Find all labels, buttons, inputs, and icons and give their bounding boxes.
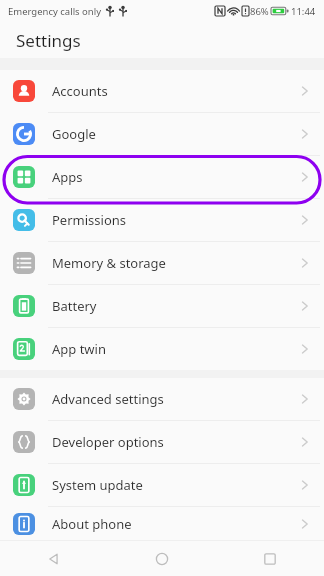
staticText: Settings bbox=[16, 29, 81, 52]
button[interactable]: Memory & storage bbox=[0, 242, 324, 284]
button[interactable]: Recents bbox=[216, 541, 324, 576]
staticText: Google bbox=[52, 125, 96, 143]
button[interactable]: Home bbox=[108, 541, 216, 576]
staticText: Developer options bbox=[52, 433, 164, 451]
staticText: Emergency calls only bbox=[8, 5, 102, 18]
staticText: About phone bbox=[52, 515, 132, 533]
staticText: App twin bbox=[52, 340, 106, 358]
button[interactable]: Permissions bbox=[0, 199, 324, 241]
staticText: Accounts bbox=[52, 82, 108, 100]
button[interactable]: Accounts bbox=[0, 70, 324, 112]
staticText: Memory & storage bbox=[52, 254, 166, 272]
staticText: Battery bbox=[52, 297, 97, 315]
staticText: Advanced settings bbox=[52, 390, 164, 408]
button[interactable]: Back bbox=[0, 541, 108, 576]
button[interactable]: Google bbox=[0, 113, 324, 155]
staticText: System update bbox=[52, 476, 143, 494]
button[interactable]: App twin bbox=[0, 328, 324, 370]
staticText: Permissions bbox=[52, 211, 127, 229]
staticText: 11:44 bbox=[291, 5, 316, 18]
staticText: 86% bbox=[250, 5, 269, 18]
button[interactable]: Advanced settings bbox=[0, 378, 324, 420]
button[interactable]: Developer options bbox=[0, 421, 324, 463]
button[interactable]: Battery bbox=[0, 285, 324, 327]
button[interactable]: About phone bbox=[0, 507, 324, 540]
staticText: Apps bbox=[52, 168, 83, 186]
button[interactable]: Apps bbox=[0, 156, 324, 198]
button[interactable]: System update bbox=[0, 464, 324, 506]
